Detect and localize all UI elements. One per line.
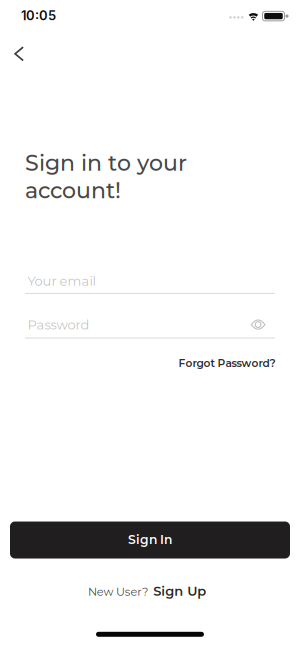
staticText: Forgot Password? <box>178 357 275 370</box>
button[interactable]: Sign Up <box>153 580 206 602</box>
button[interactable] <box>7 39 31 68</box>
staticText: 10:05 <box>21 8 56 23</box>
staticText: Sign In <box>128 532 172 547</box>
staticText: Password <box>27 317 89 333</box>
button[interactable]: Sign In <box>10 521 290 558</box>
staticText: Sign Up <box>153 583 206 599</box>
button[interactable] <box>247 316 269 333</box>
staticText: Sign in to your <box>25 149 187 176</box>
button[interactable]: Forgot Password? <box>0 357 300 370</box>
button[interactable]: Your email <box>0 270 300 306</box>
staticText: New User? <box>88 585 148 598</box>
staticText: account! <box>25 177 121 204</box>
button[interactable]: Password <box>0 310 300 346</box>
staticText: Your email <box>27 273 95 289</box>
